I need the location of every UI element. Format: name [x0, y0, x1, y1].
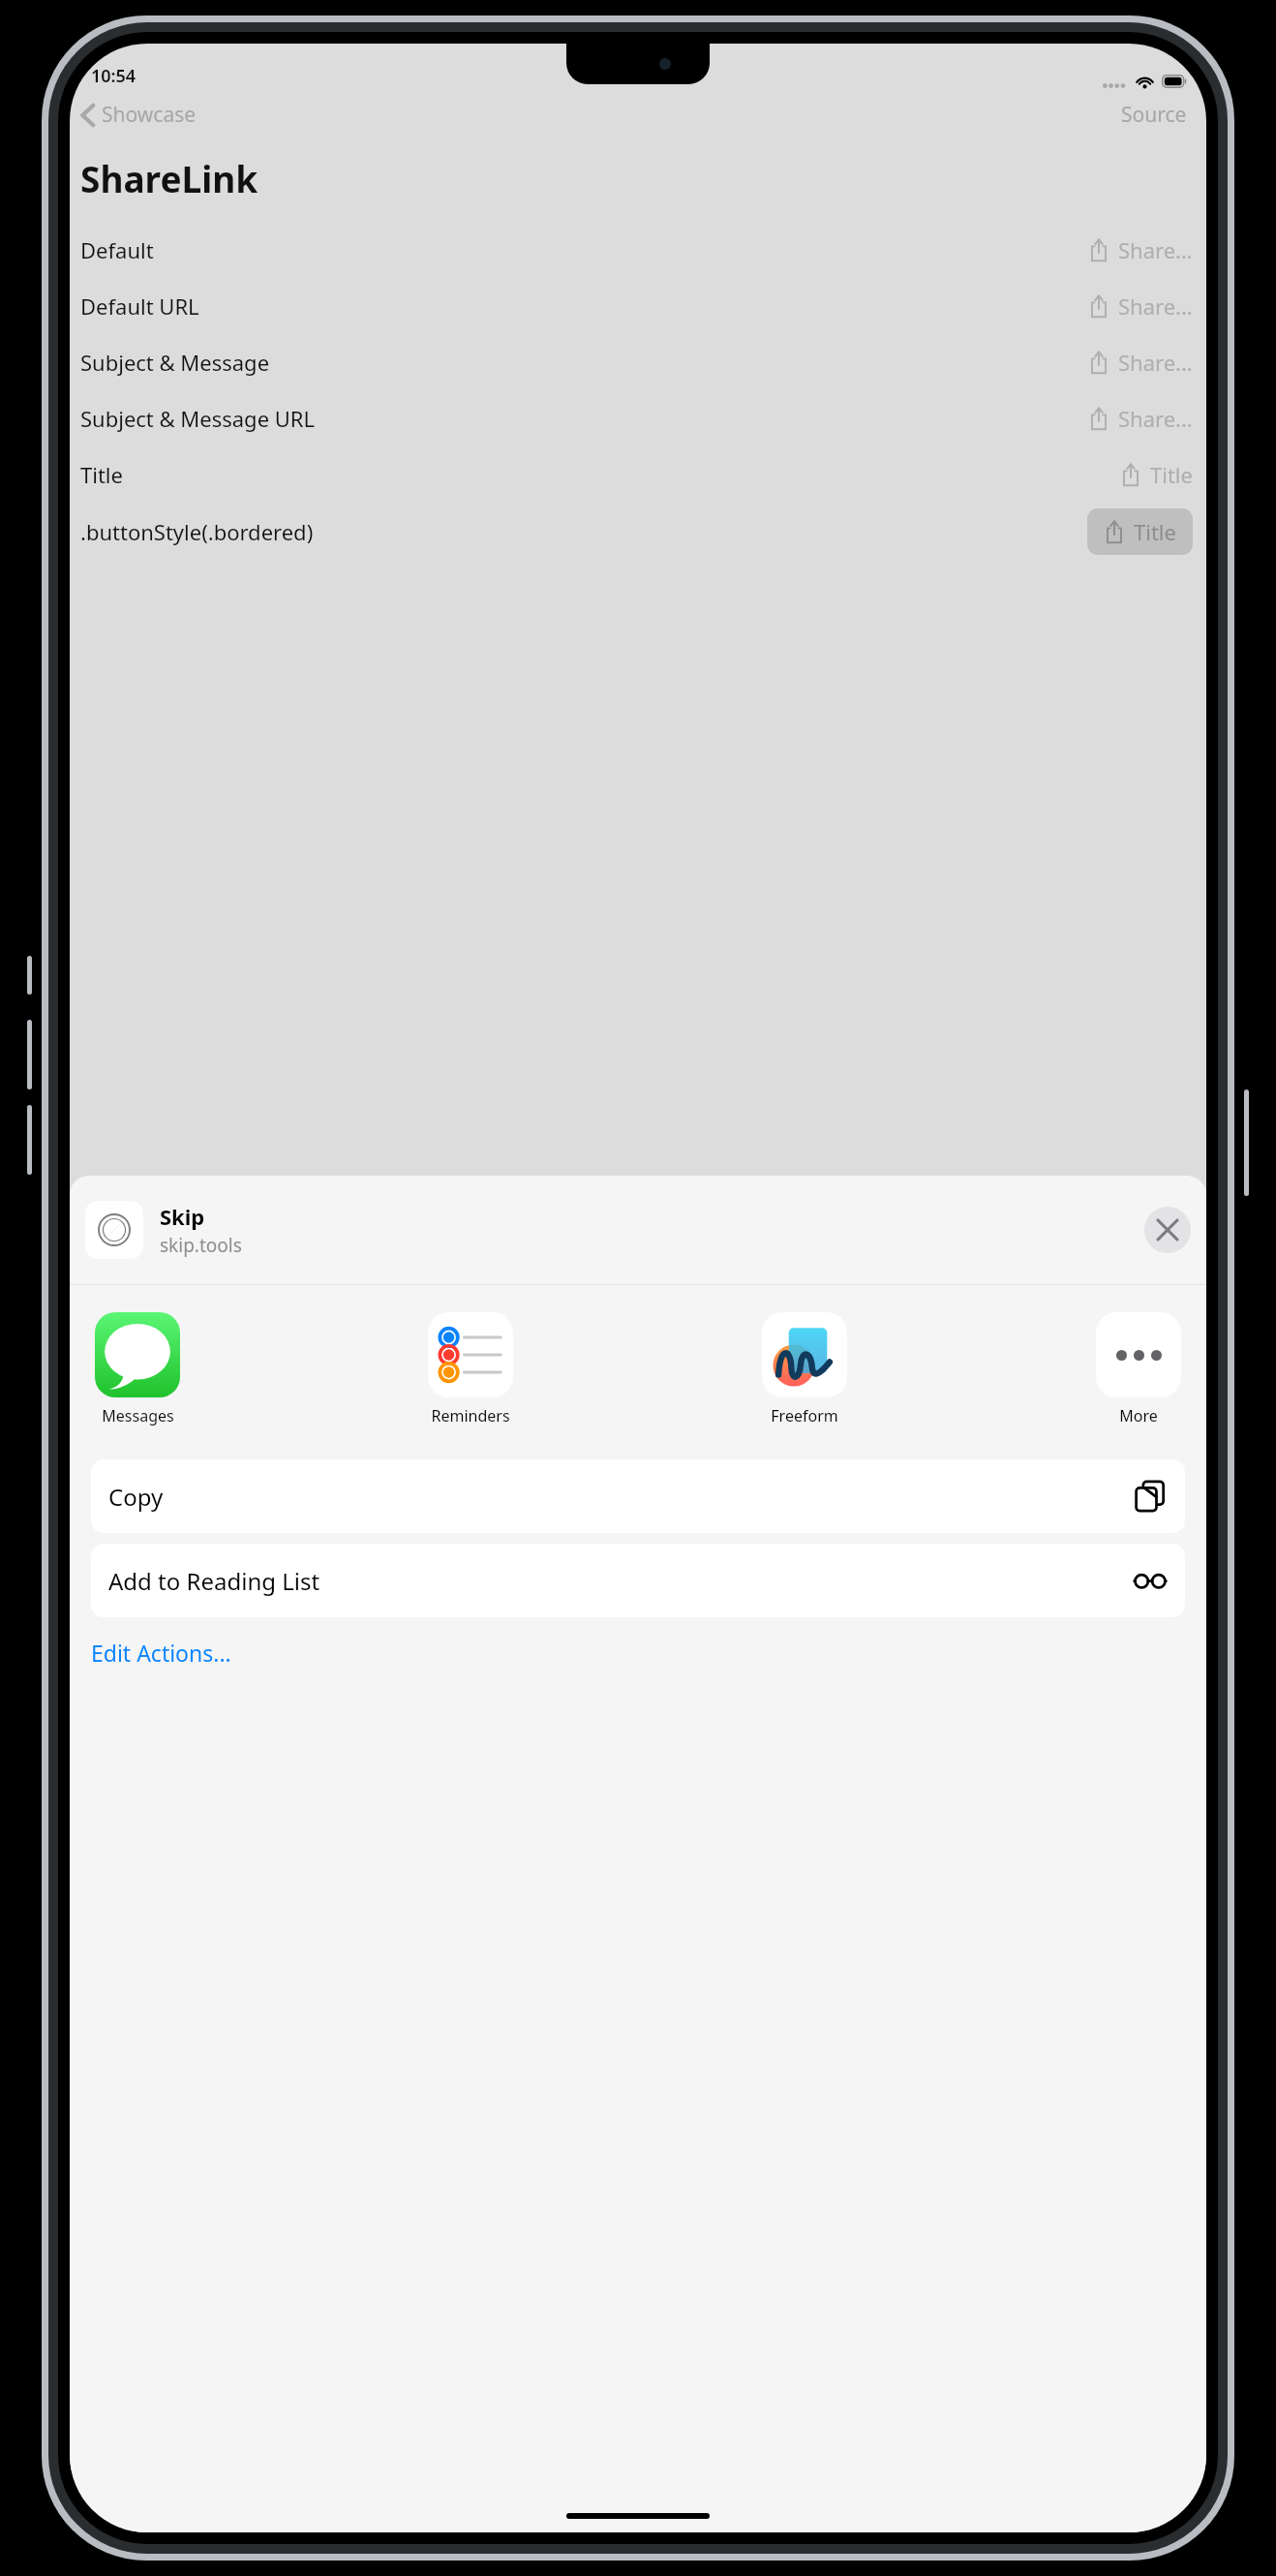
staticText: ShareLink: [80, 154, 258, 202]
staticText: Title: [80, 460, 123, 489]
staticText: Skip: [160, 1202, 205, 1231]
staticText: Default URL: [80, 291, 199, 321]
button[interactable]: Edit Actions...: [70, 1634, 241, 1675]
staticText: Freeform: [771, 1405, 838, 1426]
button[interactable]: More: [1092, 1308, 1185, 1430]
staticText: Copy: [108, 1481, 164, 1513]
button[interactable]: .buttonStyle(.bordered): [70, 503, 1206, 561]
staticText: Share...: [1118, 404, 1193, 433]
button[interactable]: Source: [1115, 95, 1193, 135]
staticText: 10:54: [91, 64, 137, 88]
staticText: Subject & Message URL: [80, 404, 316, 433]
staticText: Subject & Message: [80, 348, 270, 377]
staticText: Edit Actions...: [91, 1638, 231, 1668]
button[interactable]: Add to Reading List: [91, 1544, 1185, 1617]
staticText: Share...: [1118, 235, 1193, 264]
button[interactable]: Messages: [91, 1308, 184, 1430]
button[interactable]: Default URL: [70, 278, 1206, 334]
button[interactable]: Title: [70, 446, 1206, 503]
staticText: Source: [1121, 101, 1187, 129]
staticText: Default: [80, 235, 154, 264]
staticText: Share...: [1118, 291, 1193, 321]
staticText: Showcase: [102, 101, 197, 129]
button[interactable]: Copy: [91, 1459, 1185, 1533]
staticText: Title: [1134, 517, 1176, 546]
staticText: Messages: [102, 1405, 174, 1426]
button[interactable]: Freeform: [758, 1308, 851, 1430]
staticText: .buttonStyle(.bordered): [80, 517, 314, 546]
staticText: Add to Reading List: [108, 1565, 320, 1597]
staticText: Title: [1150, 460, 1193, 489]
button[interactable]: Showcase: [77, 95, 200, 135]
staticText: More: [1119, 1405, 1158, 1426]
staticText: Share...: [1118, 348, 1193, 377]
staticText: skip.tools: [160, 1233, 242, 1258]
button[interactable]: Reminders: [424, 1308, 517, 1430]
button[interactable]: Subject & Message: [70, 334, 1206, 390]
button[interactable]: Default: [70, 222, 1206, 278]
staticText: Reminders: [431, 1405, 510, 1426]
button[interactable]: Subject & Message URL: [70, 390, 1206, 446]
button[interactable]: Close: [1144, 1207, 1191, 1253]
